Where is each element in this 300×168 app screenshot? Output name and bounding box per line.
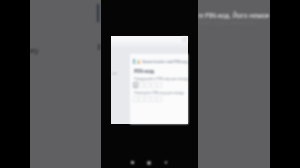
staticText: Придумайте PIN-код для входу <box>134 76 189 81</box>
staticText: wy <box>29 46 39 56</box>
button[interactable]: Запамʼятайте свій PIN-код, його не можна… <box>133 58 189 64</box>
staticText: ливо буде змінити <box>197 18 254 27</box>
button[interactable]: Recents <box>130 160 138 168</box>
button[interactable]: Home <box>146 160 154 168</box>
button[interactable]: Back <box>162 160 170 168</box>
button[interactable] <box>134 83 137 87</box>
staticText: Повторіть PIN-код для входу <box>134 90 184 95</box>
staticText: Запамʼятайте свій PIN-код, його не можна… <box>142 59 189 64</box>
staticText: PIN-код <box>134 68 154 75</box>
staticText: те PIN-код. Його немож <box>197 11 269 20</box>
